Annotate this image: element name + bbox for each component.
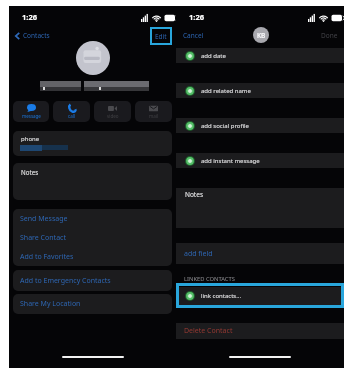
staticText: add instant message [201,157,260,165]
staticText: link contacts... [201,292,242,300]
staticText: add related name [201,87,251,95]
button[interactable]: phone [13,131,172,156]
staticText: Contacts [23,31,50,40]
staticText: mail [149,113,159,119]
staticText: LINKED CONTACTS [184,275,235,283]
button[interactable]: message [13,101,49,122]
staticText: video [107,113,119,119]
staticText: Add to Favorites [20,252,74,262]
staticText: Share Contact [20,233,66,243]
button[interactable]: add social profile [176,118,344,133]
button[interactable]: add instant message [176,153,344,168]
staticText: 1:26 [22,12,37,22]
button[interactable]: Edit [150,27,172,45]
button[interactable]: add related name [176,83,344,98]
button[interactable]: link contacts... [176,283,344,308]
button[interactable]: Add to Emergency Contacts [13,270,172,291]
staticText: Delete Contact [184,326,233,336]
staticText: Done [321,31,338,40]
button[interactable]: Delete Contact [176,323,344,339]
staticText: Cancel [183,31,204,40]
button[interactable]: Add to Favorites [13,247,172,266]
button[interactable]: add date [176,48,344,63]
staticText: Notes [21,168,39,176]
staticText: 1:26 [189,12,204,22]
button[interactable]: video [94,101,131,122]
button[interactable]: add field [176,243,344,264]
button[interactable]: Send Message [13,209,172,228]
staticText: Share My Location [20,299,81,309]
staticText: call [68,113,76,119]
staticText: phone [21,135,40,143]
button[interactable]: Share Contact [13,228,172,247]
staticText: Notes [185,190,203,199]
button[interactable]: Cancel [181,28,206,43]
button[interactable]: Done [319,28,340,43]
staticText: add field [184,249,213,259]
staticText: add date [201,52,226,60]
staticText: Add to Emergency Contacts [20,276,111,286]
button[interactable]: call [53,101,90,122]
staticText: message [22,113,41,119]
staticText: add social profile [201,122,249,130]
button[interactable]: mail [135,101,172,122]
staticText: Edit [155,32,167,41]
staticText: KB [257,31,266,40]
button[interactable]: Notes [13,163,172,200]
button[interactable]: Share My Location [13,294,172,314]
button[interactable]: Contacts [13,28,52,43]
staticText: Send Message [20,214,68,224]
